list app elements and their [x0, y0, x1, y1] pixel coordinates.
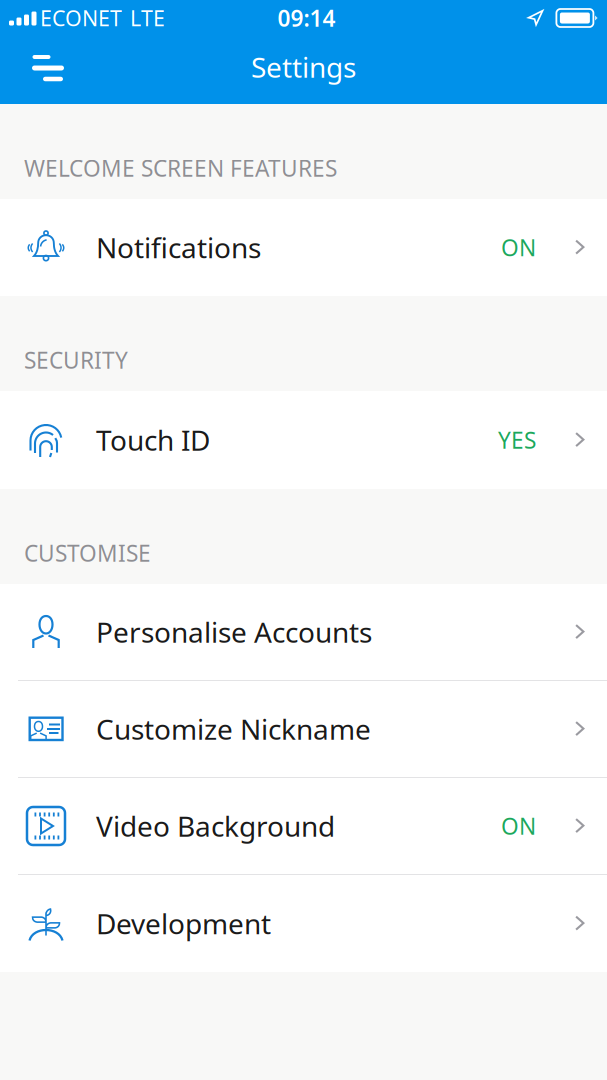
staticText: ON	[501, 811, 536, 841]
staticText: WELCOME SCREEN FEATURES	[24, 153, 337, 183]
button[interactable]: Menu	[8, 38, 88, 98]
staticText: CUSTOMISE	[24, 538, 151, 568]
staticText: Video Background	[96, 807, 335, 845]
staticText: Personalise Accounts	[96, 613, 372, 651]
staticText: Settings	[251, 48, 356, 86]
button[interactable]: Video Background	[0, 778, 607, 874]
button[interactable]: Personalise Accounts	[0, 584, 607, 680]
staticText: Development	[96, 905, 271, 942]
staticText: SECURITY	[24, 345, 128, 375]
button[interactable]: Development	[0, 875, 607, 972]
button[interactable]: Notifications	[0, 199, 607, 296]
staticText: ON	[501, 232, 536, 262]
staticText: Customize Nickname	[96, 710, 371, 748]
staticText: Notifications	[96, 229, 261, 266]
button[interactable]: Touch ID	[0, 391, 607, 489]
staticText: ECONET	[40, 4, 122, 32]
staticText: LTE	[130, 4, 165, 32]
staticText: 09:14	[277, 3, 335, 33]
staticText: YES	[498, 425, 536, 455]
button[interactable]: Customize Nickname	[0, 681, 607, 777]
staticText: Touch ID	[96, 421, 210, 459]
